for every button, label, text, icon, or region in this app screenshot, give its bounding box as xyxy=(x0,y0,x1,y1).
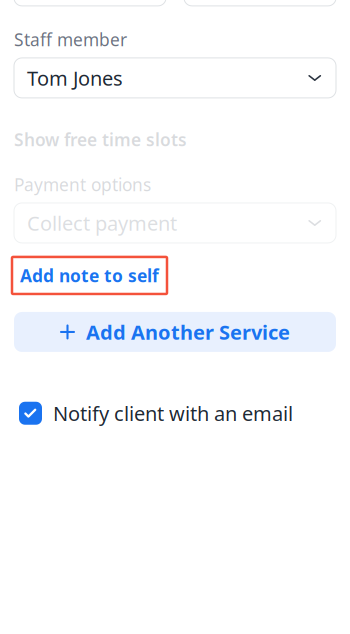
button[interactable]: Add Another Service xyxy=(14,312,336,352)
button[interactable]: Tom Jones xyxy=(14,58,336,98)
staticText: Tom Jones xyxy=(27,65,123,91)
staticText: Staff member xyxy=(14,28,127,51)
staticText: Show free time slots xyxy=(14,128,187,151)
staticText: Collect payment xyxy=(27,210,177,236)
button[interactable]: Notify client with an email xyxy=(19,396,331,431)
button[interactable]: 1hr xyxy=(184,0,336,6)
staticText: Notify client with an email xyxy=(53,400,293,427)
staticText: Add note to self xyxy=(20,264,159,287)
staticText: Payment options xyxy=(14,173,151,196)
button[interactable]: Add note to self xyxy=(12,257,167,294)
button[interactable]: 9:30 xyxy=(14,0,166,6)
staticText: Add Another Service xyxy=(86,319,290,345)
button[interactable]: Collect payment xyxy=(14,203,336,243)
